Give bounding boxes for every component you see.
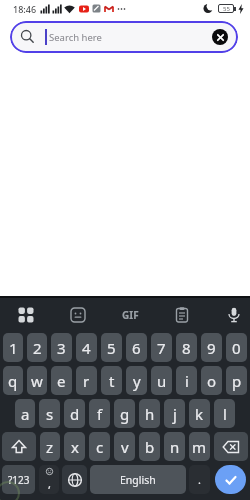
staticText: 4 [82,338,91,358]
staticText: n [170,437,180,457]
button[interactable]: 8 [176,333,197,362]
button[interactable]: e [51,366,72,395]
staticText: v [121,437,129,457]
staticText: z [46,437,54,457]
button[interactable]: 1 [3,333,23,362]
button[interactable]: u [151,366,172,395]
button[interactable] [214,432,248,461]
button[interactable]: 4 [76,333,97,362]
staticText: x [71,437,79,457]
button[interactable] [18,307,34,323]
button[interactable]: 2 [27,333,47,362]
button[interactable]: 9 [201,333,222,362]
button[interactable]: j [164,399,185,428]
staticText: e [57,371,66,391]
button[interactable]: q [3,366,23,395]
button[interactable]: English [90,465,186,494]
button[interactable]: 0 [226,333,247,362]
staticText: r [83,371,90,391]
button[interactable]: 6 [126,333,147,362]
button[interactable]: f [89,399,110,428]
staticText: y [133,371,141,391]
staticText: a [21,404,30,424]
button[interactable] [174,307,190,323]
button[interactable]: 5 [101,333,122,362]
staticText: m [192,437,207,457]
staticText: 1 [9,338,18,358]
button[interactable]: k [189,399,210,428]
button[interactable] [70,307,86,323]
staticText: b [145,437,155,457]
staticText: Search here [49,31,102,44]
staticText: 55 [223,5,230,13]
button[interactable]: s [39,399,60,428]
button[interactable]: n [164,432,185,461]
staticText: h [145,404,155,424]
button[interactable]: r [76,366,97,395]
staticText: ?123 [8,473,30,487]
staticText: 8 [182,338,191,358]
staticText: f [97,404,103,424]
button[interactable] [62,465,87,494]
button[interactable] [226,307,242,323]
button[interactable]: 7 [151,333,172,362]
button[interactable]: d [64,399,85,428]
button[interactable]: g [114,399,135,428]
button[interactable]: w [27,366,47,395]
button[interactable]: i [176,366,197,395]
staticText: 0 [232,338,241,358]
button[interactable]: o [201,366,222,395]
staticText: c [96,437,104,457]
button[interactable] [2,432,36,461]
staticText: q [8,371,18,391]
staticText: w [31,371,43,391]
button[interactable] [215,465,246,494]
staticText: . [198,472,201,487]
button[interactable]: GIF [122,308,139,322]
staticText: , [48,476,51,491]
button[interactable]: Search here [10,21,238,53]
button[interactable]: b [139,432,160,461]
staticText: t [109,371,115,391]
button[interactable]: ?123 [2,465,35,494]
staticText: k [195,404,204,424]
button[interactable]: m [189,432,210,461]
staticText: 2 [33,338,42,358]
button[interactable]: 3 [51,333,72,362]
staticText: o [207,371,217,391]
staticText: p [232,371,242,391]
staticText: d [70,404,80,424]
staticText: l [223,404,227,424]
staticText: GIF [122,308,139,322]
button[interactable]: v [114,432,135,461]
staticText: g [120,404,130,424]
button[interactable] [212,29,228,45]
button[interactable]: z [40,432,60,461]
staticText: 18:46 [13,3,37,15]
button[interactable]: p [226,366,247,395]
button[interactable]: c [89,432,110,461]
button[interactable]: y [126,366,147,395]
button[interactable]: l [214,399,235,428]
button[interactable]: . [189,465,210,494]
button[interactable]: t [101,366,122,395]
staticText: s [46,404,54,424]
staticText: u [157,371,167,391]
staticText: i [185,371,189,391]
button[interactable]: x [64,432,85,461]
staticText: 9 [207,338,216,358]
button[interactable]: h [139,399,160,428]
staticText: 5 [107,338,116,358]
button[interactable]: , [39,465,59,494]
staticText: English [120,473,156,487]
staticText: 3 [57,338,66,358]
staticText: j [173,404,177,424]
staticText: 7 [157,338,166,358]
staticText: 6 [132,338,141,358]
button[interactable]: a [15,399,35,428]
